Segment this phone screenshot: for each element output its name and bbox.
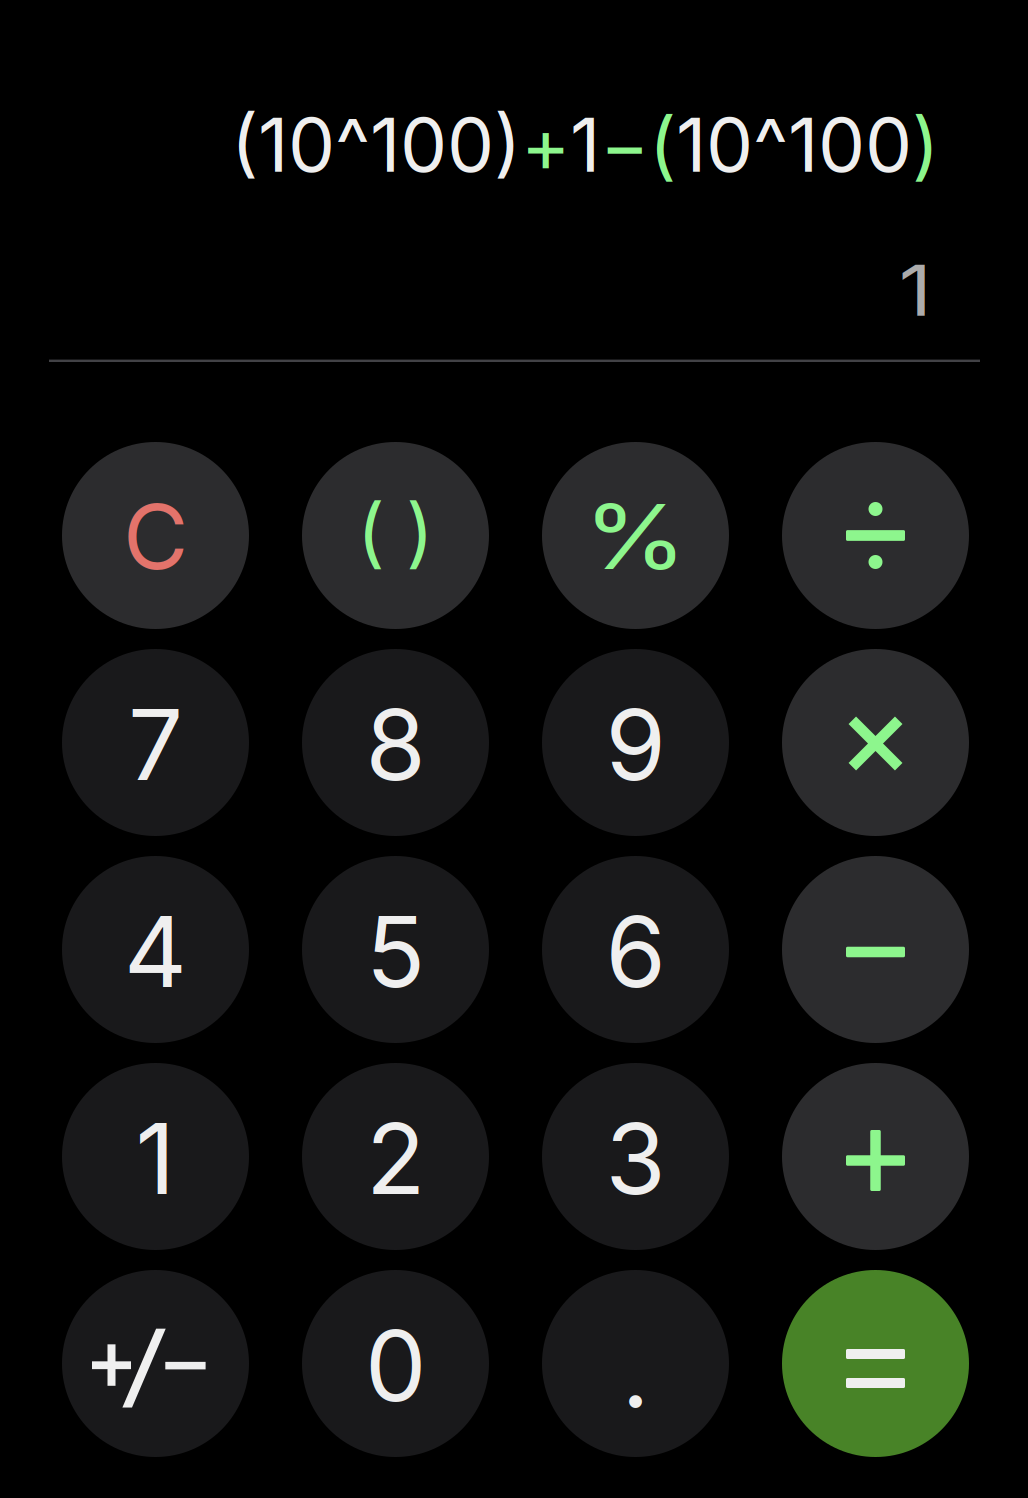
button[interactable]: 1: [62, 1063, 249, 1250]
staticText: %: [591, 482, 679, 591]
staticText: 2: [366, 1100, 425, 1217]
staticText: 8: [365, 686, 425, 803]
staticText: ): [912, 99, 939, 190]
staticText: 1: [901, 247, 930, 333]
button[interactable]: Multiply: [782, 649, 969, 836]
button[interactable]: Plus: [782, 1063, 969, 1250]
button[interactable]: 2: [302, 1063, 489, 1250]
button[interactable]: 3: [542, 1063, 729, 1250]
button[interactable]: 8: [302, 649, 489, 836]
staticText: (: [649, 99, 676, 190]
staticText: .: [621, 1313, 649, 1430]
button[interactable]: Percent: [542, 442, 729, 629]
button[interactable]: 7: [62, 649, 249, 836]
button[interactable]: 9: [542, 649, 729, 836]
button[interactable]: Clear: [62, 442, 249, 629]
staticText: 3: [605, 1100, 665, 1217]
button[interactable]: Plus Minus: [62, 1270, 249, 1457]
staticText: 6: [605, 893, 665, 1010]
button[interactable]: 6: [542, 856, 729, 1043]
staticText: 4: [124, 893, 187, 1010]
button[interactable]: Equals: [782, 1270, 969, 1457]
button[interactable]: 5: [302, 856, 489, 1043]
button[interactable]: Decimal point: [542, 1270, 729, 1457]
button[interactable]: Parentheses: [302, 442, 489, 629]
staticText: C: [123, 482, 188, 591]
staticText: ( ): [357, 485, 434, 577]
button[interactable]: 4: [62, 856, 249, 1043]
button[interactable]: Minus: [782, 856, 969, 1043]
button[interactable]: 0: [302, 1270, 489, 1457]
staticText: 0: [365, 1307, 426, 1424]
staticText: +: [521, 99, 570, 190]
staticText: 9: [605, 686, 665, 803]
button[interactable]: Divide: [782, 442, 969, 629]
staticText: −: [600, 99, 649, 190]
staticText: (10^100): [231, 99, 521, 190]
staticText: 1: [135, 1100, 175, 1217]
staticText: 5: [366, 893, 425, 1010]
staticText: 10^100: [676, 99, 912, 190]
staticText: 7: [128, 686, 183, 803]
staticText: 1: [570, 99, 600, 190]
